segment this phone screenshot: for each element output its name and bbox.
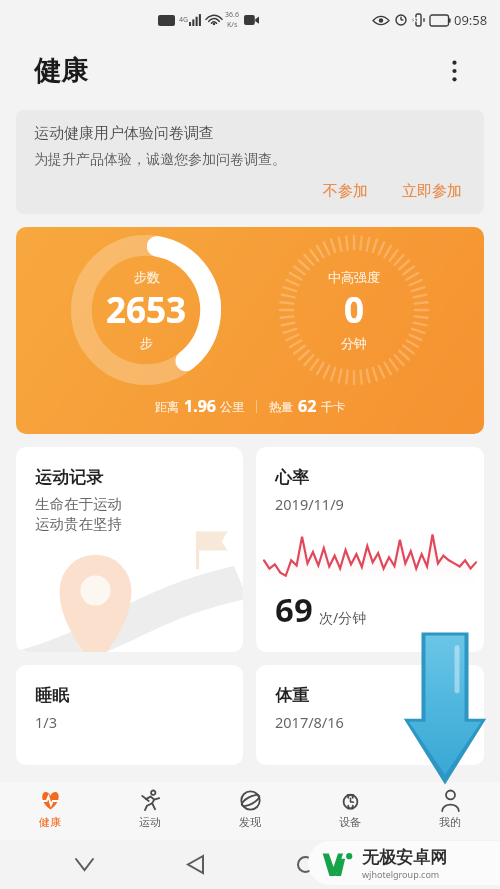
staticText: 体重: [275, 685, 309, 706]
staticText: 无极安卓网: [362, 847, 447, 868]
staticText: 1/3: [35, 712, 57, 732]
staticText: 2017/8/16: [275, 712, 344, 732]
staticText: 步数: [134, 269, 160, 285]
button[interactable]: Hide keyboard: [58, 840, 110, 889]
staticText: 分钟: [341, 335, 367, 351]
button[interactable]: 不参加: [317, 179, 374, 204]
button[interactable]: 运动健康用户体验问卷调查: [16, 110, 484, 214]
staticText: 62: [298, 395, 317, 417]
staticText: 健康: [39, 815, 61, 829]
button[interactable]: More options: [434, 51, 474, 91]
staticText: 1.96: [184, 395, 216, 417]
staticText: wjhotelgroup.com: [362, 868, 440, 880]
staticText: 健康: [34, 54, 88, 88]
button[interactable]: 设备: [300, 782, 400, 840]
staticText: 生命在于运动: [35, 495, 122, 513]
staticText: 我的: [439, 815, 461, 829]
button[interactable]: 健康: [0, 782, 100, 840]
staticText: 心率: [275, 467, 309, 488]
staticText: 设备: [339, 815, 361, 829]
staticText: 距离: [155, 399, 179, 414]
staticText: 运动记录: [35, 467, 103, 488]
staticText: 公里: [220, 399, 244, 414]
staticText: 热量: [269, 399, 293, 414]
staticText: 2653: [106, 286, 187, 334]
staticText: 不参加: [323, 182, 368, 201]
button[interactable]: 立即参加: [396, 179, 468, 204]
staticText: 为提升产品体验，诚邀您参加问卷调查。: [34, 151, 286, 169]
staticText: 步: [140, 335, 153, 351]
button[interactable]: 运动记录: [16, 447, 243, 652]
staticText: 中高强度: [328, 269, 380, 285]
button[interactable]: 发现: [200, 782, 300, 840]
staticText: 69: [275, 587, 313, 632]
staticText: 运动健康用户体验问卷调查: [34, 124, 214, 143]
staticText: 次/分钟: [319, 608, 367, 627]
staticText: 4G: [179, 15, 189, 25]
staticText: 运动: [139, 815, 161, 829]
button[interactable]: 我的: [400, 782, 500, 840]
staticText: 09:58: [454, 11, 488, 29]
button[interactable]: 运动: [100, 782, 200, 840]
staticText: 36.6: [225, 10, 239, 20]
staticText: 2019/11/9: [275, 494, 344, 514]
staticText: K/s: [227, 20, 238, 30]
button[interactable]: Home: [279, 840, 331, 889]
staticText: 睡眠: [35, 685, 69, 706]
button[interactable]: 体重: [256, 665, 484, 765]
staticText: 千卡: [321, 399, 345, 414]
button[interactable]: Back: [169, 840, 221, 889]
button[interactable]: 步数: [16, 227, 484, 434]
staticText: 发现: [239, 815, 261, 829]
button[interactable]: 心率: [256, 447, 484, 652]
button[interactable]: 睡眠: [16, 665, 243, 765]
staticText: 85: [412, 15, 421, 25]
staticText: 0: [344, 286, 365, 334]
staticText: 立即参加: [402, 182, 462, 201]
staticText: 运动贵在坚持: [35, 515, 122, 533]
